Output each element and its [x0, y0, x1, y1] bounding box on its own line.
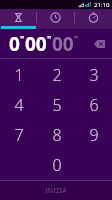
staticText: 7 [14, 124, 24, 146]
staticText: 0 [9, 31, 20, 57]
button[interactable]: 2 [38, 59, 75, 90]
button[interactable]: Timer [0, 9, 36, 26]
staticText: 5 [52, 94, 62, 116]
staticText: 21:10 [94, 1, 110, 9]
button[interactable]: 3 [75, 59, 112, 90]
staticText: 00 [52, 31, 74, 57]
button[interactable]: INIZIA [0, 181, 112, 200]
button[interactable]: 7 [0, 120, 38, 150]
button[interactable]: 6 [75, 90, 112, 120]
button[interactable]: Alarm [37, 9, 74, 26]
staticText: " [20, 32, 25, 44]
staticText: 0 [52, 154, 62, 176]
button[interactable]: Backspace [92, 38, 106, 49]
staticText: 00 [25, 31, 47, 57]
button[interactable]: 4 [0, 90, 38, 120]
button[interactable]: Stopwatch [75, 9, 112, 26]
button[interactable]: 5 [38, 90, 75, 120]
staticText: 6 [89, 94, 99, 116]
staticText: 4 [14, 94, 24, 116]
staticText: " [74, 32, 79, 44]
staticText: 2 [52, 64, 62, 86]
button[interactable]: 1 [0, 59, 38, 90]
staticText: 1 [14, 64, 24, 86]
button[interactable]: 8 [38, 120, 75, 150]
staticText: " [47, 32, 52, 44]
staticText: 9 [89, 124, 99, 146]
button[interactable]: 0 [38, 150, 75, 180]
button[interactable]: 9 [75, 120, 112, 150]
staticText: 3 [89, 64, 99, 86]
staticText: INIZIA [45, 186, 67, 196]
staticText: 8 [52, 124, 62, 146]
